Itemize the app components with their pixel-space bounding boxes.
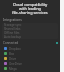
button[interactable]: Shared links bbox=[2, 27, 58, 31]
button[interactable]: Drive bbox=[0, 56, 60, 61]
staticText: Integrations bbox=[3, 18, 22, 22]
button[interactable]: Auto backup bbox=[2, 35, 58, 39]
button[interactable]: Storage sync bbox=[2, 23, 58, 27]
button[interactable]: OneDrive bbox=[0, 61, 60, 66]
staticText: Connected bbox=[3, 41, 19, 45]
staticText: OneDrive bbox=[9, 62, 22, 66]
button[interactable]: Mega bbox=[0, 66, 60, 71]
button[interactable]: Offline files bbox=[2, 31, 58, 35]
staticText: Box bbox=[9, 52, 15, 56]
staticText: Auto backup bbox=[4, 35, 22, 39]
staticText: Dropbox bbox=[9, 47, 21, 51]
button[interactable]: Dropbox bbox=[0, 46, 60, 51]
staticText: Mega bbox=[9, 67, 17, 71]
staticText: Storage sync bbox=[4, 23, 22, 27]
staticText: Shared links bbox=[4, 27, 21, 31]
button[interactable]: Box bbox=[0, 51, 60, 56]
staticText: Drive bbox=[9, 57, 17, 61]
staticText: Offline files bbox=[4, 31, 20, 35]
staticText: Cloud compatibility with leading file-sh… bbox=[0, 2, 60, 16]
